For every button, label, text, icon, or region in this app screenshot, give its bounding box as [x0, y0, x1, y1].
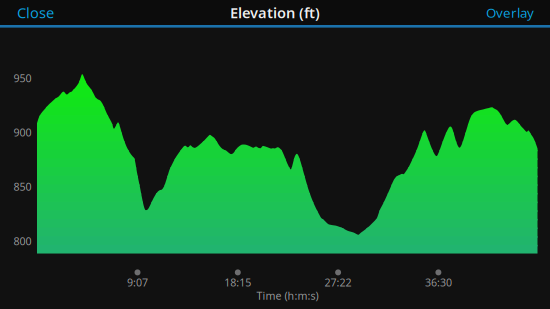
staticText: 18:15 — [224, 275, 251, 289]
staticText: 850 — [13, 180, 31, 194]
staticText: 9:07 — [127, 275, 148, 289]
staticText: 36:30 — [425, 275, 452, 289]
button[interactable]: Overlay — [474, 0, 550, 25]
staticText: 900 — [13, 125, 31, 139]
staticText: 800 — [13, 234, 31, 248]
button[interactable]: Close — [0, 0, 66, 25]
staticText: 27:22 — [325, 275, 352, 289]
staticText: 950 — [13, 71, 31, 85]
staticText: Close — [17, 3, 54, 22]
staticText: Elevation (ft) — [230, 3, 320, 22]
staticText: Time (h:m:s) — [256, 288, 318, 303]
staticText: Overlay — [486, 4, 534, 21]
